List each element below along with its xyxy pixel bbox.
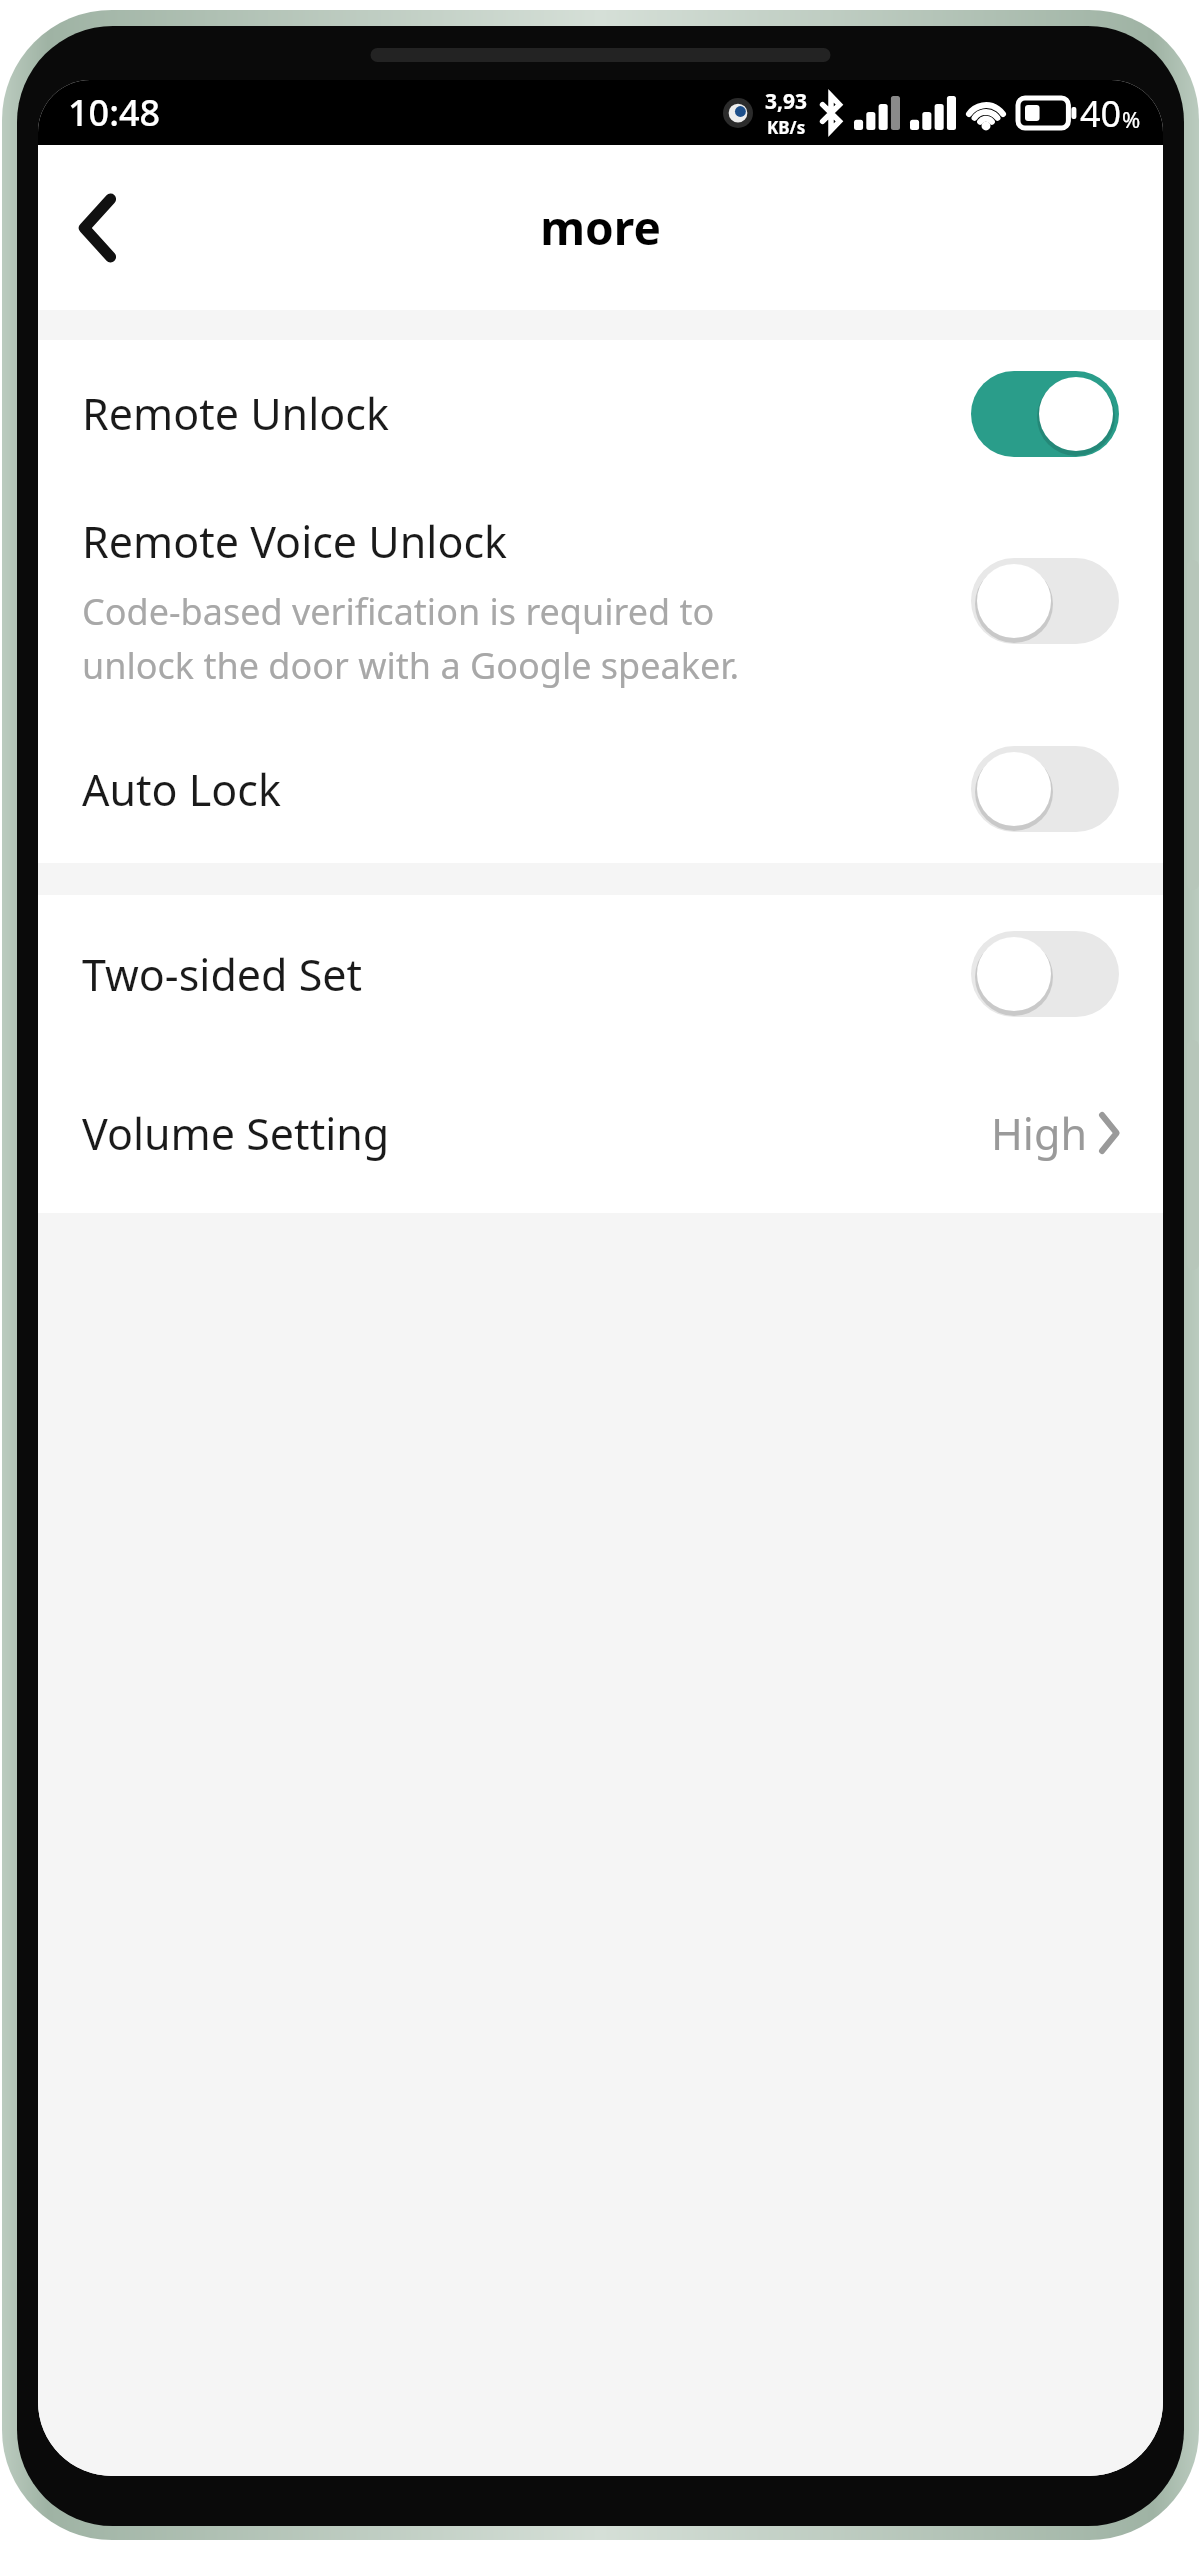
staticText: Two-sided Set bbox=[82, 945, 971, 1004]
staticText: 40 bbox=[1080, 89, 1122, 138]
staticText: High bbox=[991, 1104, 1087, 1163]
button[interactable]: Volume Setting bbox=[38, 1053, 1163, 1213]
staticText: Volume Setting bbox=[82, 1104, 991, 1163]
button[interactable]: Back bbox=[56, 186, 140, 270]
staticText: KB/s bbox=[767, 116, 806, 139]
button[interactable]: Off bbox=[971, 931, 1119, 1017]
button[interactable]: Remote Voice Unlock bbox=[38, 487, 1163, 715]
staticText: Auto Lock bbox=[82, 760, 971, 819]
staticText: 10:48 bbox=[68, 88, 161, 137]
staticText: more bbox=[540, 196, 661, 259]
staticText: Remote Voice Unlock bbox=[82, 512, 508, 571]
button[interactable]: Remote Unlock bbox=[38, 340, 1163, 487]
staticText: % bbox=[1122, 104, 1141, 134]
staticText: Code-based verification is required to u… bbox=[82, 587, 740, 690]
button[interactable]: Auto Lock bbox=[38, 715, 1163, 863]
staticText: 3,93 bbox=[765, 87, 808, 116]
button[interactable]: On bbox=[971, 371, 1119, 457]
button[interactable]: Two-sided Set bbox=[38, 895, 1163, 1053]
button[interactable]: Off bbox=[971, 558, 1119, 644]
staticText: Remote Unlock bbox=[82, 384, 971, 443]
button[interactable]: Off bbox=[971, 746, 1119, 832]
